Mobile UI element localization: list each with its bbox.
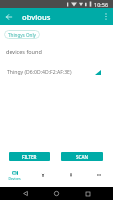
button[interactable]: SCAN <box>61 152 103 161</box>
button[interactable]: More <box>85 164 113 187</box>
button[interactable]: Places <box>57 164 85 187</box>
staticText: obvious <box>22 12 51 22</box>
button[interactable]: Home <box>51 188 62 199</box>
staticText: 10:56 <box>94 1 109 8</box>
staticText: Thingys Only <box>8 32 36 38</box>
staticText: FILTER <box>22 154 37 160</box>
staticText: devices found <box>6 48 42 55</box>
button[interactable]: Navigate up <box>2 8 15 25</box>
button[interactable]: Thingys Only <box>4 30 40 39</box>
button[interactable]: Back <box>20 188 31 199</box>
staticText: SCAN <box>76 154 89 160</box>
button[interactable]: Thingy (D6:0D:4D:F2:AF:3E) <box>0 65 113 79</box>
button[interactable]: Devices <box>0 164 29 187</box>
button[interactable]: Recent apps <box>82 188 93 199</box>
button[interactable]: Pets <box>29 164 57 187</box>
button[interactable]: More options <box>99 8 113 25</box>
staticText: Devices <box>8 176 21 181</box>
staticText: Thingy (D6:0D:4D:F2:AF:3E) <box>7 69 72 76</box>
button[interactable]: FILTER <box>9 152 50 161</box>
